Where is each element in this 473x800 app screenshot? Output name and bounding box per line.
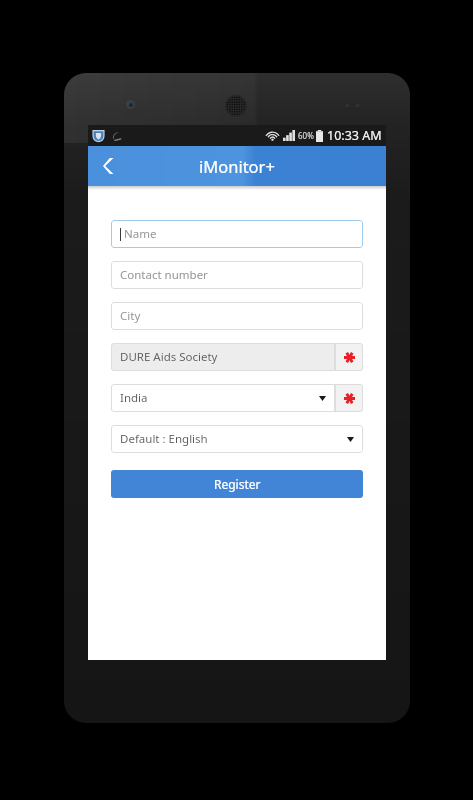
staticText: India bbox=[120, 390, 148, 406]
staticText: 60% bbox=[298, 130, 314, 141]
button[interactable]: Name bbox=[111, 220, 363, 248]
button[interactable]: Contact number bbox=[111, 261, 363, 289]
button[interactable]: Required bbox=[335, 384, 363, 412]
button[interactable]: DURE Aids Society bbox=[111, 343, 335, 371]
staticText: Default : English bbox=[120, 431, 208, 447]
button[interactable]: Default : English bbox=[111, 425, 363, 453]
staticText: DURE Aids Society bbox=[120, 349, 218, 365]
staticText: iMonitor+ bbox=[199, 155, 275, 177]
staticText: Contact number bbox=[120, 267, 208, 283]
button[interactable]: Back bbox=[88, 146, 128, 186]
staticText: Name bbox=[124, 226, 157, 242]
staticText: 10:33 AM bbox=[327, 127, 382, 144]
staticText: City bbox=[120, 308, 141, 324]
button[interactable]: Required bbox=[335, 343, 363, 371]
button[interactable]: City bbox=[111, 302, 363, 330]
staticText: Register bbox=[214, 476, 261, 492]
button[interactable]: Register bbox=[111, 470, 363, 498]
button[interactable]: India bbox=[111, 384, 335, 412]
